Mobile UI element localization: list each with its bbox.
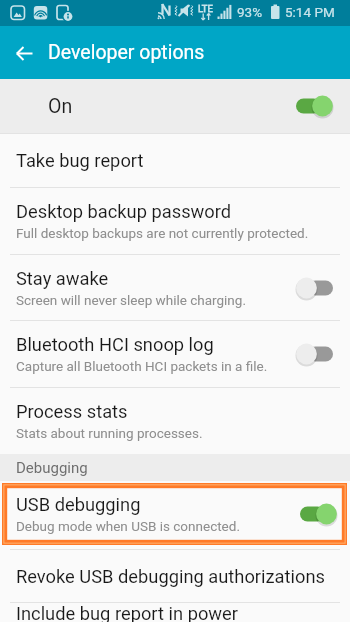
button[interactable]: Desktop backup password: [0, 188, 350, 254]
button[interactable]: On: [0, 79, 350, 133]
staticText: On: [48, 95, 296, 118]
staticText: Debug mode when USB is connected.: [16, 518, 240, 534]
button[interactable]: USB debugging: [2, 483, 347, 545]
staticText: Debugging: [16, 459, 88, 477]
button[interactable]: Stay awake: [0, 255, 350, 320]
staticText: Process stats: [16, 401, 128, 422]
button[interactable]: Include bug report in power: [0, 603, 350, 622]
staticText: Stay awake: [16, 268, 109, 289]
staticText: 93%: [237, 4, 263, 20]
staticText: Include bug report in power: [16, 603, 238, 622]
staticText: Desktop backup password: [16, 201, 232, 222]
staticText: Screen will never sleep while charging.: [16, 292, 246, 308]
staticText: LTE: [198, 3, 213, 14]
staticText: Developer options: [48, 41, 205, 64]
button[interactable]: Take bug report: [0, 134, 350, 187]
button[interactable]: Back: [4, 33, 44, 73]
staticText: USB debugging: [16, 494, 141, 515]
staticText: Take bug report: [16, 150, 144, 171]
button[interactable]: Process stats: [0, 388, 350, 454]
staticText: Stats about running processes.: [16, 425, 203, 441]
button[interactable]: Bluetooth HCI snoop log: [0, 321, 350, 387]
staticText: Full desktop backups are not currently p…: [16, 225, 309, 241]
staticText: Bluetooth HCI snoop log: [16, 334, 214, 355]
staticText: Revoke USB debugging authorizations: [16, 566, 325, 587]
staticText: Capture all Bluetooth HCI packets in a f…: [16, 358, 268, 374]
button[interactable]: Revoke USB debugging authorizations: [0, 550, 350, 602]
staticText: 5:14 PM: [285, 4, 335, 20]
